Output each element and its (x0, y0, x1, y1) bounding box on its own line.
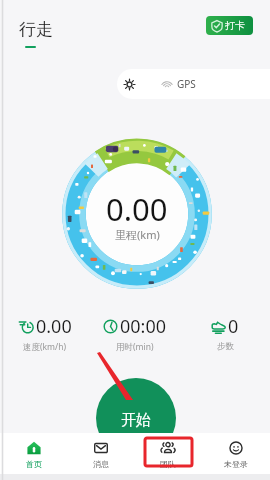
staticText: 首页 (26, 459, 42, 469)
button[interactable]: 未登录 (202, 441, 270, 474)
staticText: 开始 (121, 411, 151, 430)
other: 未登录 (229, 441, 243, 455)
staticText: 未登录 (224, 459, 248, 469)
staticText: 用时(min) (116, 341, 154, 353)
button[interactable]: 团队 (134, 441, 202, 474)
staticText: 0.00 (106, 188, 168, 230)
button[interactable]: 0.00 (0, 314, 90, 353)
staticText: 打卡 (225, 19, 245, 32)
other: 首页 (27, 441, 41, 455)
staticText: GPS (177, 77, 196, 91)
button[interactable]: 打卡 (206, 16, 253, 35)
staticText: 里程(km) (115, 227, 160, 242)
button[interactable]: 0 (180, 314, 270, 352)
button[interactable]: 00:00 (90, 314, 180, 353)
staticText: 行走 (19, 19, 53, 40)
staticText: 0 (228, 314, 239, 339)
button[interactable]: 消息 (67, 441, 134, 474)
button[interactable]: Brightness (117, 69, 270, 99)
staticText: 速度(km/h) (23, 341, 67, 353)
button[interactable]: 首页 (0, 441, 67, 474)
staticText: 团队 (160, 459, 176, 469)
button[interactable]: 开始 (96, 378, 176, 458)
staticText: 步数 (217, 341, 234, 352)
other: 消息 (94, 441, 108, 455)
other: 团队 (161, 441, 175, 455)
other: Brightness (124, 79, 135, 90)
staticText: 0.00 (36, 314, 72, 339)
staticText: 00:00 (120, 314, 167, 339)
staticText: 消息 (93, 459, 109, 469)
